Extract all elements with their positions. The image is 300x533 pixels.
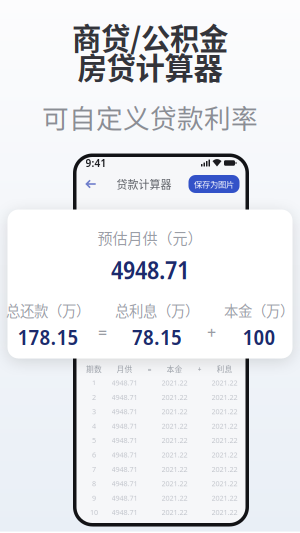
staticText: 4948.71 xyxy=(111,464,137,474)
staticText: 期数 xyxy=(86,363,102,375)
staticText: 2021.22 xyxy=(161,407,187,416)
staticText: 2021.22 xyxy=(161,464,187,474)
staticText: 2021.22 xyxy=(211,435,237,445)
staticText: 1 xyxy=(92,378,96,388)
staticText: 贷款计算器 xyxy=(116,176,171,192)
staticText: 2021.22 xyxy=(161,392,187,402)
staticText: 2021.22 xyxy=(211,479,237,488)
staticText: = xyxy=(147,364,151,374)
staticText: 商贷/公积金 xyxy=(72,15,228,58)
staticText: 2021.22 xyxy=(161,435,187,445)
staticText: + xyxy=(207,322,216,344)
staticText: 2021.22 xyxy=(211,450,237,460)
staticText: 2021.22 xyxy=(211,507,237,517)
staticText: 4948.71 xyxy=(111,479,137,488)
staticText: 2021.22 xyxy=(211,407,237,416)
staticText: 8 xyxy=(92,479,96,488)
staticText: 2021.22 xyxy=(211,464,237,474)
staticText: 10 xyxy=(90,507,98,517)
staticText: 2021.22 xyxy=(161,479,187,488)
staticText: 2021.22 xyxy=(161,493,187,503)
staticText: 4948.71 xyxy=(111,252,189,287)
staticText: 2021.22 xyxy=(211,378,237,388)
button[interactable]: Back xyxy=(82,176,99,191)
staticText: 利息 xyxy=(216,363,232,375)
staticText: 总还款（万） xyxy=(6,300,90,321)
staticText: 2 xyxy=(92,392,96,402)
staticText: 7 xyxy=(92,464,96,474)
staticText: 5 xyxy=(92,435,96,445)
staticText: + xyxy=(197,364,201,374)
staticText: 2021.22 xyxy=(211,493,237,503)
staticText: = xyxy=(98,322,107,344)
staticText: 4948.71 xyxy=(111,435,137,445)
button[interactable]: 保存为图片 xyxy=(188,175,239,193)
staticText: 4948.71 xyxy=(111,392,137,402)
staticText: 房贷计算器 xyxy=(77,45,222,87)
staticText: 100 xyxy=(242,322,275,352)
staticText: 9 xyxy=(92,493,96,503)
staticText: 2021.22 xyxy=(161,421,187,431)
staticText: 4948.71 xyxy=(111,378,137,388)
staticText: 3 xyxy=(92,407,96,416)
staticText: 2021.22 xyxy=(161,507,187,517)
staticText: 78.15 xyxy=(132,322,182,352)
staticText: 2021.22 xyxy=(211,392,237,402)
staticText: 4948.71 xyxy=(111,407,137,416)
staticText: 4948.71 xyxy=(111,493,137,503)
staticText: 2021.22 xyxy=(211,421,237,431)
staticText: 保存为图片 xyxy=(194,178,234,190)
staticText: 178.15 xyxy=(17,322,78,352)
staticText: 9:41 xyxy=(85,156,106,170)
staticText: 4 xyxy=(92,421,96,431)
staticText: 4948.71 xyxy=(111,507,137,517)
staticText: 2021.22 xyxy=(161,450,187,460)
staticText: 预估月供（元） xyxy=(97,226,202,248)
staticText: 4948.71 xyxy=(111,421,137,431)
staticText: 6 xyxy=(92,450,96,460)
staticText: 4948.71 xyxy=(111,450,137,460)
staticText: 月供 xyxy=(116,363,132,375)
staticText: 总利息（万） xyxy=(115,300,199,321)
staticText: 本金 xyxy=(166,363,182,375)
staticText: 2021.22 xyxy=(161,378,187,388)
staticText: 本金（万） xyxy=(224,300,294,321)
staticText: 可自定义贷款利率 xyxy=(42,97,258,136)
